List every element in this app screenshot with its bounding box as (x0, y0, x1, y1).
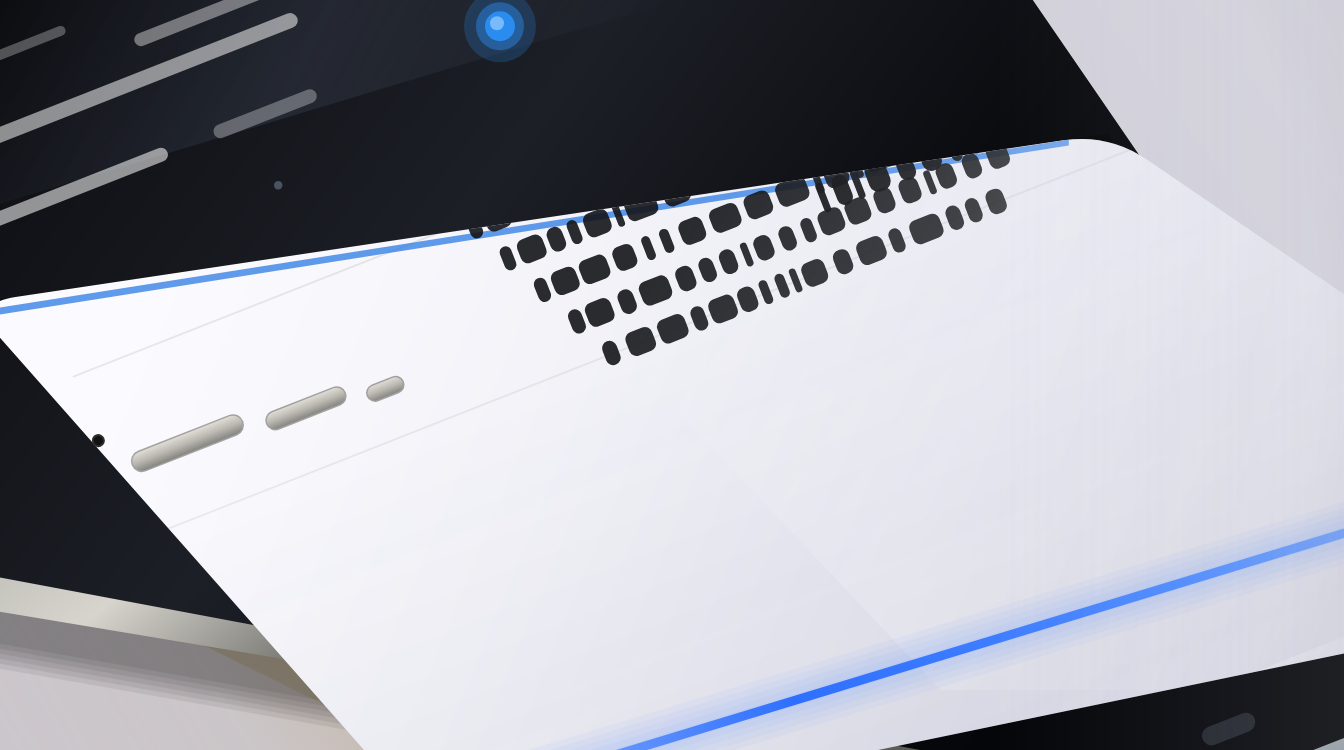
button[interactable]: Phone on desk showing an app card (0, 0, 1344, 750)
button[interactable]: Open item (0, 0, 1344, 750)
